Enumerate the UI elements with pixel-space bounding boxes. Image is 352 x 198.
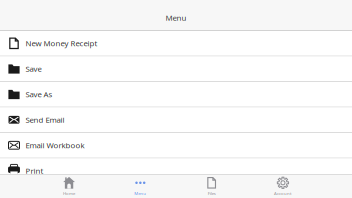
- staticText: Save As: [25, 89, 52, 100]
- button[interactable]: New Money Receipt: [0, 31, 352, 56]
- button[interactable]: Home: [33, 175, 105, 198]
- staticText: Home: [63, 190, 75, 196]
- staticText: Save: [25, 63, 41, 74]
- staticText: Send Email: [25, 114, 64, 125]
- button[interactable]: Save: [0, 56, 352, 81]
- staticText: Email Workbook: [25, 140, 84, 151]
- button[interactable]: Files: [176, 175, 247, 198]
- button[interactable]: Send Email: [0, 107, 352, 132]
- staticText: Print: [25, 165, 43, 176]
- button[interactable]: Account: [247, 175, 319, 198]
- button[interactable]: Email Workbook: [0, 133, 352, 158]
- button[interactable]: Save As: [0, 82, 352, 107]
- staticText: Account: [274, 190, 292, 196]
- staticText: Menu: [134, 190, 146, 196]
- staticText: New Money Receipt: [25, 38, 97, 49]
- button[interactable]: Menu: [105, 175, 176, 198]
- button[interactable]: Print: [0, 158, 352, 183]
- staticText: Menu: [165, 12, 186, 23]
- staticText: Files: [208, 190, 216, 196]
